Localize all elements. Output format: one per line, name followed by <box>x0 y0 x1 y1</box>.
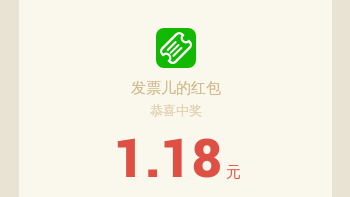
staticText: 元 <box>226 163 241 182</box>
button[interactable]: Coupon <box>156 28 196 68</box>
staticText: 恭喜中奖 <box>150 102 202 118</box>
staticText: 1.18 <box>114 122 223 197</box>
staticText: 发票儿的红包 <box>131 79 221 98</box>
